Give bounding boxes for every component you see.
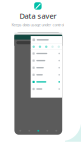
staticText: Keeps data usage under control bbox=[11, 22, 64, 27]
staticText: Data saver bbox=[19, 11, 56, 21]
